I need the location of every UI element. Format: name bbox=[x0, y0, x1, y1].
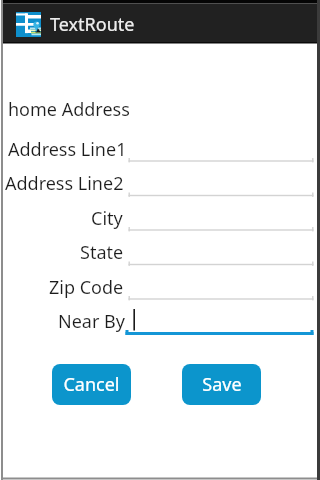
button[interactable]: input field bbox=[129, 308, 314, 337]
button[interactable]: input field bbox=[129, 273, 314, 302]
button[interactable]: Cancel bbox=[52, 364, 131, 405]
staticText: Address Line1 bbox=[8, 137, 127, 162]
staticText: Zip Code bbox=[49, 275, 124, 300]
button[interactable]: input field bbox=[129, 170, 314, 199]
staticText: TextRoute bbox=[50, 12, 135, 37]
staticText: City bbox=[91, 206, 123, 231]
button[interactable]: input field bbox=[129, 204, 314, 233]
staticText: Near By bbox=[58, 309, 125, 334]
button[interactable]: Save bbox=[182, 364, 261, 405]
other: TextRoute bbox=[16, 12, 41, 37]
staticText: Cancel bbox=[63, 372, 120, 397]
staticText: State bbox=[80, 240, 124, 265]
button[interactable]: input field bbox=[129, 239, 314, 268]
staticText: Address Line2 bbox=[5, 171, 124, 196]
button[interactable]: input field bbox=[129, 135, 314, 164]
staticText: home Address bbox=[8, 97, 130, 122]
staticText: Save bbox=[202, 372, 242, 397]
